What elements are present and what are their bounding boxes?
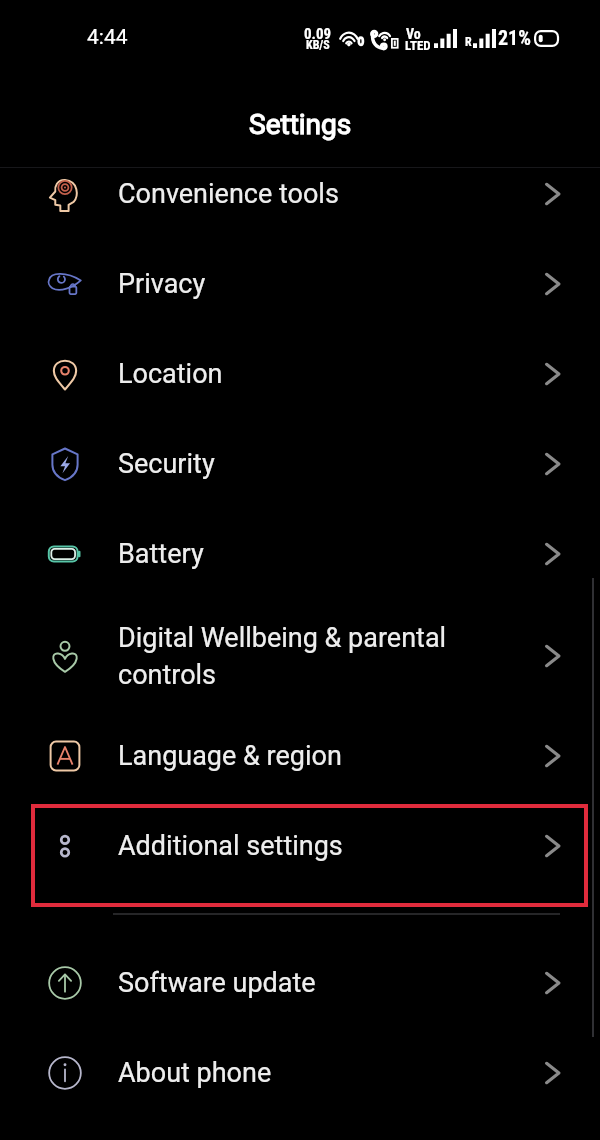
button[interactable]: Additional settings (0, 801, 600, 891)
staticText: Software update (118, 967, 472, 999)
staticText: Security (118, 448, 472, 480)
button[interactable]: Language & region (0, 711, 600, 801)
staticText: R (465, 35, 472, 49)
staticText: Vo (406, 26, 421, 42)
staticText: About phone (118, 1057, 472, 1089)
staticText: Convenience tools (118, 178, 472, 210)
staticText: 21% (498, 26, 531, 49)
button[interactable]: Security (0, 419, 600, 509)
button[interactable]: Software update (0, 938, 600, 1028)
button[interactable]: Battery (0, 509, 600, 599)
button[interactable]: Digital Wellbeing & parental controls (0, 602, 600, 710)
staticText: Settings (249, 108, 352, 141)
button[interactable]: Privacy (0, 239, 600, 329)
staticText: 0.09 (304, 25, 332, 43)
staticText: LTED (405, 38, 431, 53)
staticText: Language & region (118, 740, 472, 772)
staticText: Digital Wellbeing & parental controls (118, 622, 472, 691)
staticText: Location (118, 358, 472, 390)
staticText: Additional settings (118, 830, 472, 862)
staticText: 4:44 (87, 25, 128, 50)
button[interactable]: Location (0, 329, 600, 419)
staticText: Battery (118, 538, 472, 570)
button[interactable]: About phone (0, 1028, 600, 1118)
staticText: Privacy (118, 268, 472, 300)
button[interactable]: Convenience tools (0, 149, 600, 239)
staticText: KB/S (306, 38, 330, 52)
